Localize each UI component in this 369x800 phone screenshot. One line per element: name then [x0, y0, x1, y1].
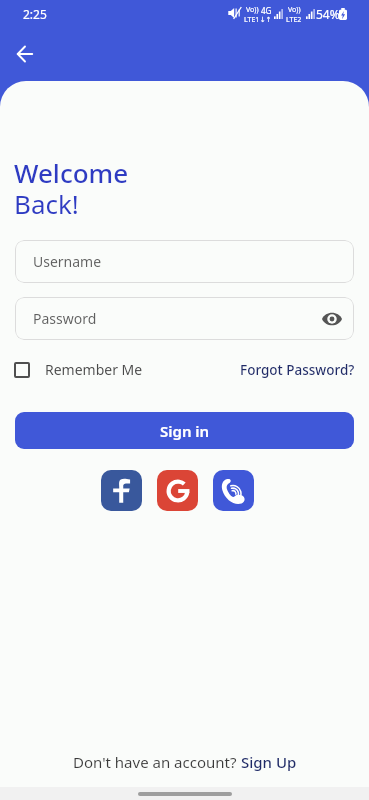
button[interactable]: Sign Up — [241, 752, 297, 772]
button[interactable]: Sign in with Facebook — [101, 470, 142, 511]
button[interactable]: Back — [9, 38, 41, 70]
staticText: 2:25 — [23, 6, 47, 22]
staticText: Don't have an account? — [73, 752, 241, 772]
staticText: Remember Me — [45, 360, 143, 379]
button[interactable]: Password — [15, 297, 354, 340]
staticText: 4G — [261, 5, 272, 16]
staticText: Vo)) — [288, 5, 301, 15]
staticText: Welcome — [14, 155, 129, 190]
staticText: Back! — [14, 186, 79, 221]
button[interactable]: Sign in with phone — [213, 470, 254, 511]
button[interactable]: Show password — [319, 306, 345, 332]
button[interactable]: Sign in — [15, 412, 354, 449]
button[interactable]: Remember Me — [14, 360, 143, 379]
staticText: Sign in — [160, 421, 210, 441]
staticText: Vo)) — [246, 5, 259, 15]
button[interactable]: Username — [15, 240, 354, 283]
staticText: Username — [33, 252, 102, 271]
staticText: Forgot Password? — [240, 361, 355, 379]
staticText: Sign Up — [241, 752, 297, 772]
button[interactable]: Forgot Password? — [240, 361, 355, 379]
staticText: LTE2 — [286, 15, 302, 25]
button[interactable]: Sign in with Google — [157, 470, 198, 511]
staticText: ↓↑ — [260, 16, 272, 24]
staticText: LTE1 — [244, 15, 260, 25]
staticText: 54% — [316, 6, 340, 22]
staticText: Password — [33, 309, 97, 328]
